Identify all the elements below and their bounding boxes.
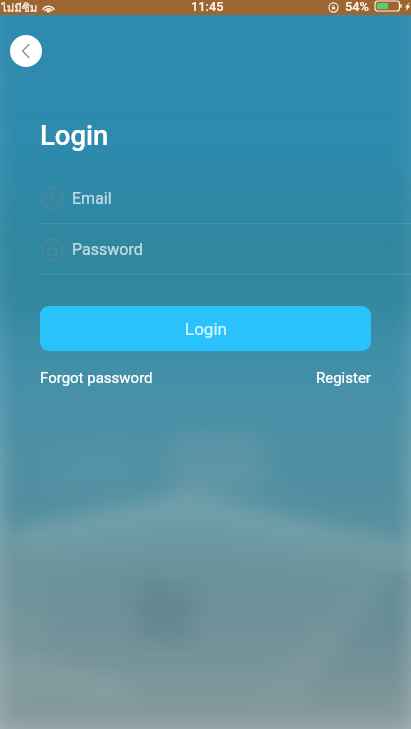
staticText: ไม่มีซิม [1, 0, 38, 14]
staticText: Register [316, 369, 371, 387]
staticText: Email [72, 189, 112, 208]
staticText: 11:45 [191, 0, 224, 14]
button[interactable]: Password [41, 234, 341, 264]
staticText: Login [40, 119, 109, 151]
staticText: 54% [345, 0, 369, 14]
staticText: Login [185, 319, 227, 339]
button[interactable]: Forgot password [40, 369, 153, 387]
button[interactable]: Email [41, 183, 341, 213]
button[interactable]: Login [40, 306, 371, 351]
button[interactable]: Back [10, 35, 42, 67]
staticText: Password [72, 240, 143, 259]
staticText: Forgot password [40, 369, 153, 387]
button[interactable]: Register [316, 369, 371, 387]
